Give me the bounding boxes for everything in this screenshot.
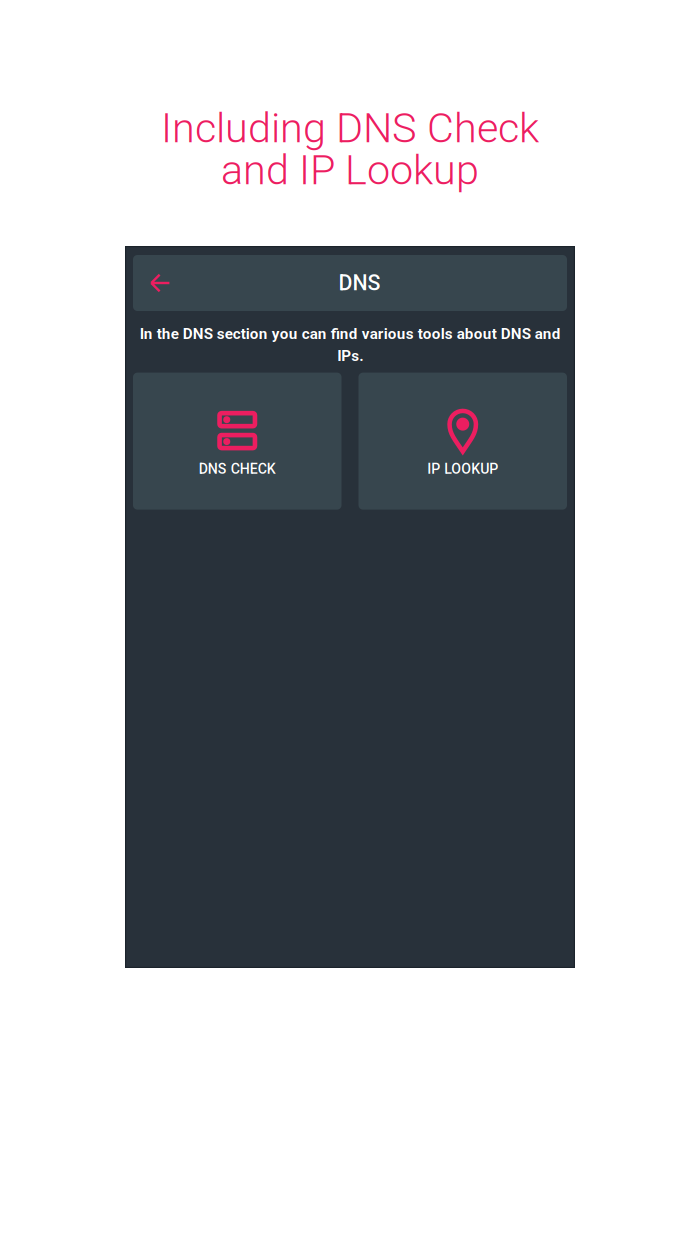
button[interactable]: DNS CHECK [133,373,341,510]
staticText: In the DNS section you can find various … [139,325,560,365]
staticText: DNS [338,270,380,295]
staticText: Including DNS Check [161,104,539,152]
staticText: and IP Lookup [221,146,479,194]
staticText: IP LOOKUP [427,461,498,477]
button[interactable]: Back [133,255,193,311]
button[interactable]: IP LOOKUP [358,373,567,510]
staticText: DNS CHECK [199,461,276,477]
